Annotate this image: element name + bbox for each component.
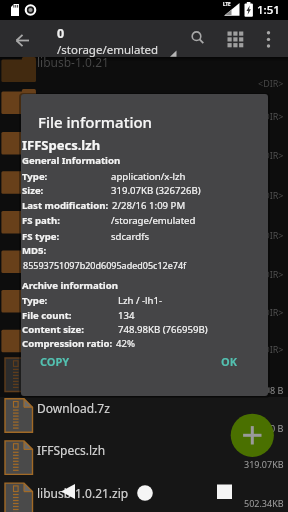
staticText: 8 B xyxy=(270,384,284,396)
button[interactable]: OK xyxy=(206,348,252,374)
staticText: 319.07KB xyxy=(244,458,284,470)
staticText: Size: xyxy=(22,184,44,197)
button[interactable] xyxy=(254,22,284,54)
staticText: Archive information xyxy=(22,279,118,292)
staticText: libusb-1.0.21.zip xyxy=(37,485,129,501)
staticText: Type: xyxy=(22,294,48,307)
staticText: <DIR> xyxy=(258,149,284,161)
staticText: COPY xyxy=(40,354,70,369)
staticText: <DIR> xyxy=(258,77,284,89)
button[interactable] xyxy=(8,26,38,56)
button[interactable] xyxy=(182,22,212,54)
button[interactable] xyxy=(129,478,161,508)
staticText: Download.7z xyxy=(37,400,110,416)
staticText: <DIR> xyxy=(258,110,284,122)
staticText: FS path: xyxy=(22,214,60,227)
staticText: Last modification: xyxy=(22,199,109,212)
button[interactable] xyxy=(0,20,288,57)
button[interactable] xyxy=(52,478,84,508)
staticText: <DIR> xyxy=(258,268,284,280)
staticText: <DIR> xyxy=(258,189,284,201)
staticText: libusb-1.0.21 xyxy=(37,54,109,70)
staticText: 502.34KB xyxy=(244,497,284,509)
staticText: /storage/emulated xyxy=(111,214,196,227)
staticText: <DIR> xyxy=(258,229,284,241)
staticText: 1:51 xyxy=(257,2,280,18)
staticText: Content size: xyxy=(22,323,85,336)
staticText: 85593751097b20d6095aded05c12e74f xyxy=(23,259,187,271)
staticText: 319.07KB (326726B) xyxy=(111,184,201,197)
staticText: IFFSpecs.lzh xyxy=(22,136,101,154)
button[interactable] xyxy=(0,438,288,480)
staticText: 0 xyxy=(57,25,65,42)
staticText: 2/28/16 1:09 PM xyxy=(112,199,186,212)
staticText: 42% xyxy=(116,337,135,350)
staticText: 0 B xyxy=(270,422,284,434)
button[interactable] xyxy=(0,396,288,438)
button[interactable] xyxy=(209,478,241,508)
staticText: General Information xyxy=(22,154,121,167)
staticText: Type: xyxy=(22,170,48,183)
staticText: File information xyxy=(38,112,153,132)
staticText: OK xyxy=(221,354,238,369)
staticText: <DIR> xyxy=(258,343,284,355)
staticText: <DIR> xyxy=(258,306,284,318)
button[interactable]: COPY xyxy=(25,348,85,374)
button[interactable] xyxy=(220,22,250,54)
staticText: /storage/emulated xyxy=(57,42,159,58)
staticText: 748.98KB (766959B) xyxy=(118,323,208,336)
staticText: Compression ratio: xyxy=(22,337,113,350)
staticText: Lzh / -lh1- xyxy=(118,294,163,307)
staticText: File count: xyxy=(22,309,72,322)
staticText: IFFSpecs.lzh xyxy=(37,442,106,458)
staticText: LTE xyxy=(223,1,231,7)
staticText: 134 xyxy=(118,309,135,322)
staticText: sdcardfs xyxy=(111,230,150,243)
button[interactable] xyxy=(0,480,210,512)
staticText: FS type: xyxy=(22,230,60,243)
staticText: MD5: xyxy=(22,244,47,257)
button[interactable] xyxy=(230,413,275,458)
staticText: application/x-lzh xyxy=(111,170,186,183)
